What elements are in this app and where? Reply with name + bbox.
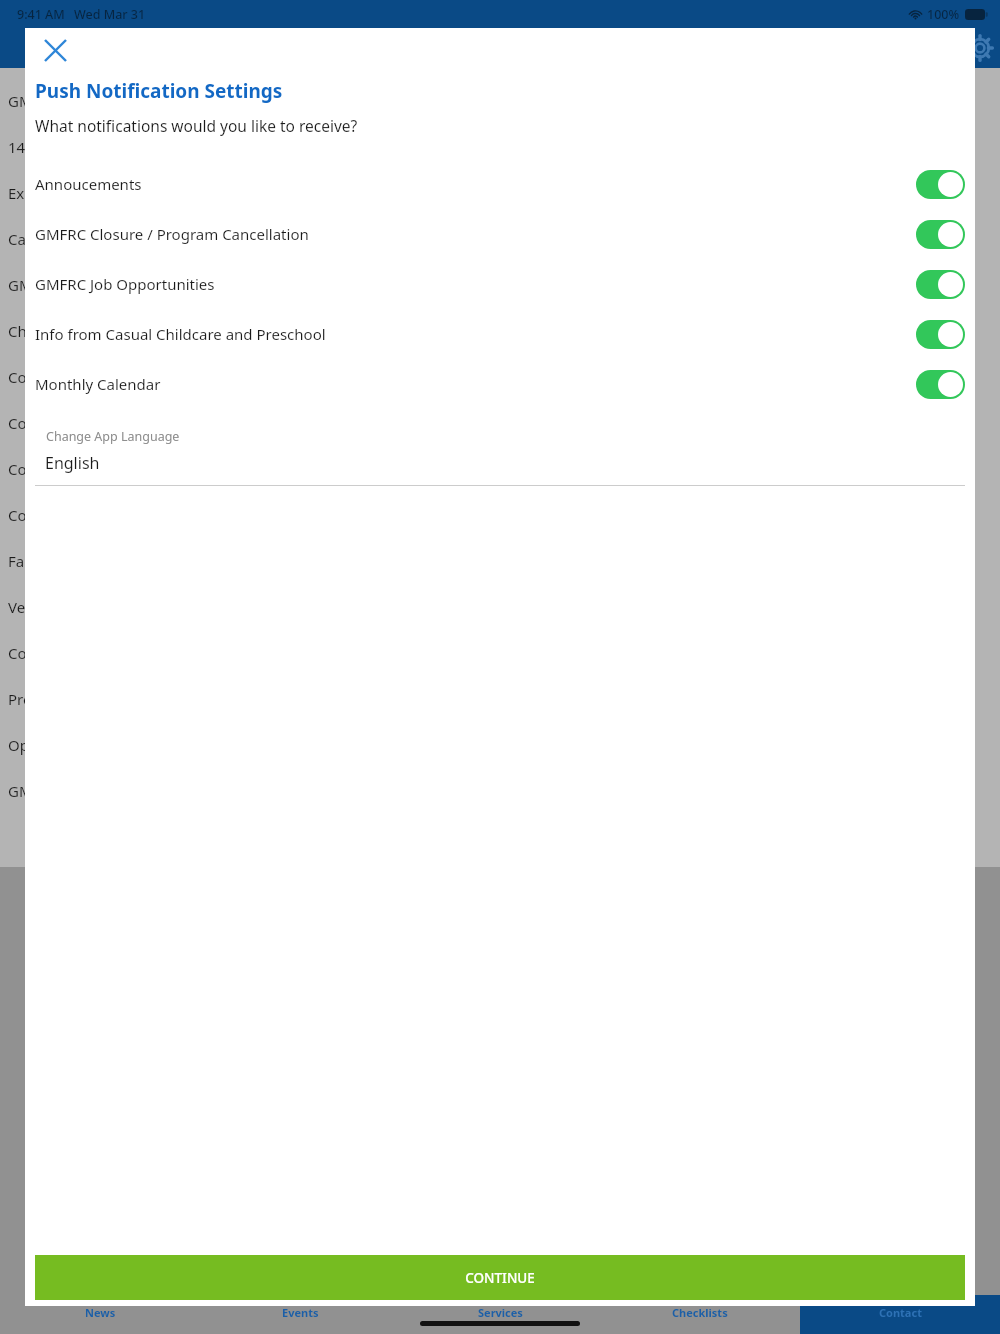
button[interactable]: Info from Casual Childcare and Preschool xyxy=(25,309,975,359)
staticText: News xyxy=(85,1305,116,1320)
button[interactable]: Monthly Calendar xyxy=(25,359,975,409)
staticText: GMFRC Closure / Program Cancellation xyxy=(35,224,309,244)
staticText: Change App Language xyxy=(46,428,180,445)
staticText: Community xyxy=(8,505,91,525)
staticText: Monthly Calendar xyxy=(35,374,161,394)
staticText: CONTINUE xyxy=(465,1269,535,1287)
staticText: Wed Mar 31 xyxy=(74,6,146,23)
button[interactable]: GMFRC Job Opportunities xyxy=(25,259,975,309)
button[interactable]: GMFRC Closure / Program Cancellation xyxy=(25,209,975,259)
button[interactable]: Toggle GMFRC Closure / Program Cancellat… xyxy=(916,220,965,249)
button[interactable]: Annoucements xyxy=(25,159,975,209)
button[interactable]: Toggle Annoucements xyxy=(916,170,965,199)
staticText: Community xyxy=(8,459,91,479)
staticText: Child Youth xyxy=(8,321,89,341)
other: Settings xyxy=(967,35,993,61)
staticText: GMFRC Prog xyxy=(8,275,97,295)
staticText: Family Sep xyxy=(8,551,84,571)
staticText: GMFRC Info xyxy=(8,91,92,111)
staticText: What notifications would you like to rec… xyxy=(35,115,358,136)
staticText: GMFRC Job Opportunities xyxy=(35,274,215,294)
staticText: Community xyxy=(8,367,91,387)
button[interactable]: Services xyxy=(400,1295,600,1334)
button[interactable]: News xyxy=(0,1295,200,1334)
button[interactable]: Change App Language xyxy=(35,428,965,486)
staticText: Open Hours xyxy=(8,735,94,755)
staticText: 100% xyxy=(927,6,960,23)
staticText: Casual Care xyxy=(8,229,91,249)
staticText: 9:41 AM xyxy=(17,6,65,23)
staticText: Express xyxy=(8,183,63,203)
staticText: Annoucements xyxy=(35,174,142,194)
staticText: Contact xyxy=(879,1305,922,1320)
staticText: Community xyxy=(8,413,91,433)
staticText: Events xyxy=(282,1305,319,1320)
button[interactable]: Toggle Info from Casual Childcare and Pr… xyxy=(916,320,965,349)
staticText: GMFRC Staff xyxy=(8,781,96,801)
button[interactable]: CONTINUE xyxy=(35,1255,965,1300)
staticText: Push Notification Settings xyxy=(35,78,283,104)
staticText: Veteran Fam xyxy=(8,597,97,617)
button[interactable]: Checklists xyxy=(600,1295,800,1334)
staticText: Prevention xyxy=(8,689,85,709)
staticText: English xyxy=(45,452,100,474)
staticText: Counselling xyxy=(8,643,91,663)
button[interactable]: Toggle GMFRC Job Opportunities xyxy=(916,270,965,299)
staticText: Info from Casual Childcare and Preschool xyxy=(35,324,326,344)
staticText: Checklists xyxy=(672,1305,728,1320)
button[interactable]: Contact xyxy=(800,1295,1000,1334)
button[interactable]: Toggle Monthly Calendar xyxy=(916,370,965,399)
staticText: 14 Wing xyxy=(8,137,66,157)
staticText: Services xyxy=(478,1305,523,1320)
button[interactable]: Close xyxy=(33,28,77,72)
button[interactable]: Events xyxy=(200,1295,400,1334)
